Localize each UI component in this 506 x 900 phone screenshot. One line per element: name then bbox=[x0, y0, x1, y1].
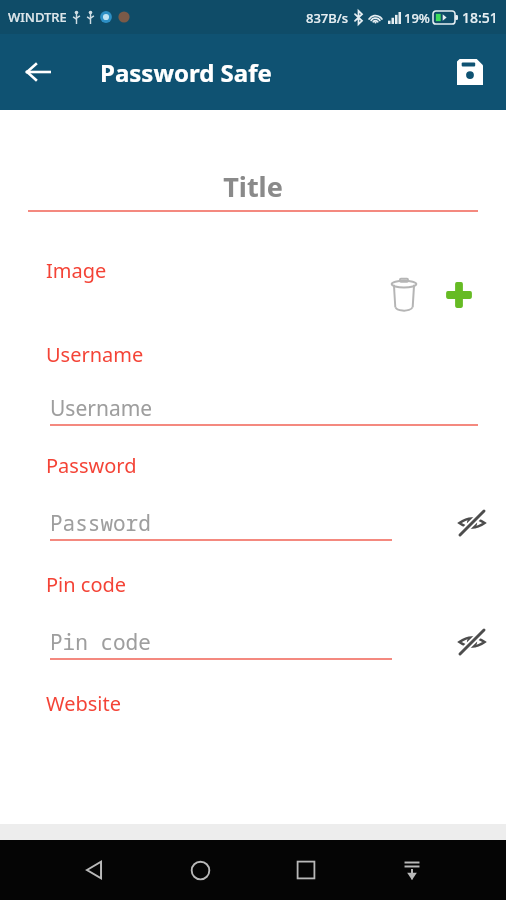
button[interactable]: Recent apps bbox=[282, 846, 330, 894]
staticText: WINDTRE bbox=[8, 8, 67, 26]
staticText: 18:51 bbox=[462, 8, 498, 27]
staticText: Pin code bbox=[50, 628, 151, 657]
button[interactable]: Pin code bbox=[50, 624, 392, 660]
staticText: Website bbox=[46, 690, 122, 717]
button[interactable]: Password bbox=[50, 505, 392, 541]
staticText: Title bbox=[223, 168, 283, 205]
button[interactable]: Username bbox=[50, 390, 478, 426]
button[interactable]: Toggle visibility bbox=[450, 501, 494, 545]
button[interactable]: Hide keyboard bbox=[388, 846, 436, 894]
button[interactable]: Back bbox=[70, 846, 118, 894]
button[interactable]: Toggle visibility bbox=[450, 620, 494, 664]
staticText: Password bbox=[50, 509, 151, 538]
staticText: Image bbox=[46, 257, 107, 284]
button[interactable]: Delete image bbox=[384, 275, 424, 315]
button[interactable]: Save bbox=[446, 48, 494, 96]
staticText: Username bbox=[50, 394, 153, 423]
staticText: Password bbox=[46, 452, 137, 479]
staticText: Password Safe bbox=[100, 56, 272, 89]
staticText: 19% bbox=[404, 9, 430, 27]
staticText: 837B/s bbox=[306, 9, 349, 27]
staticText: Username bbox=[46, 341, 144, 368]
staticText: Pin code bbox=[46, 571, 127, 598]
button[interactable]: Title bbox=[28, 160, 478, 212]
button[interactable]: Add image bbox=[440, 276, 478, 314]
button[interactable]: Home bbox=[176, 846, 224, 894]
button[interactable]: Back bbox=[14, 48, 62, 96]
